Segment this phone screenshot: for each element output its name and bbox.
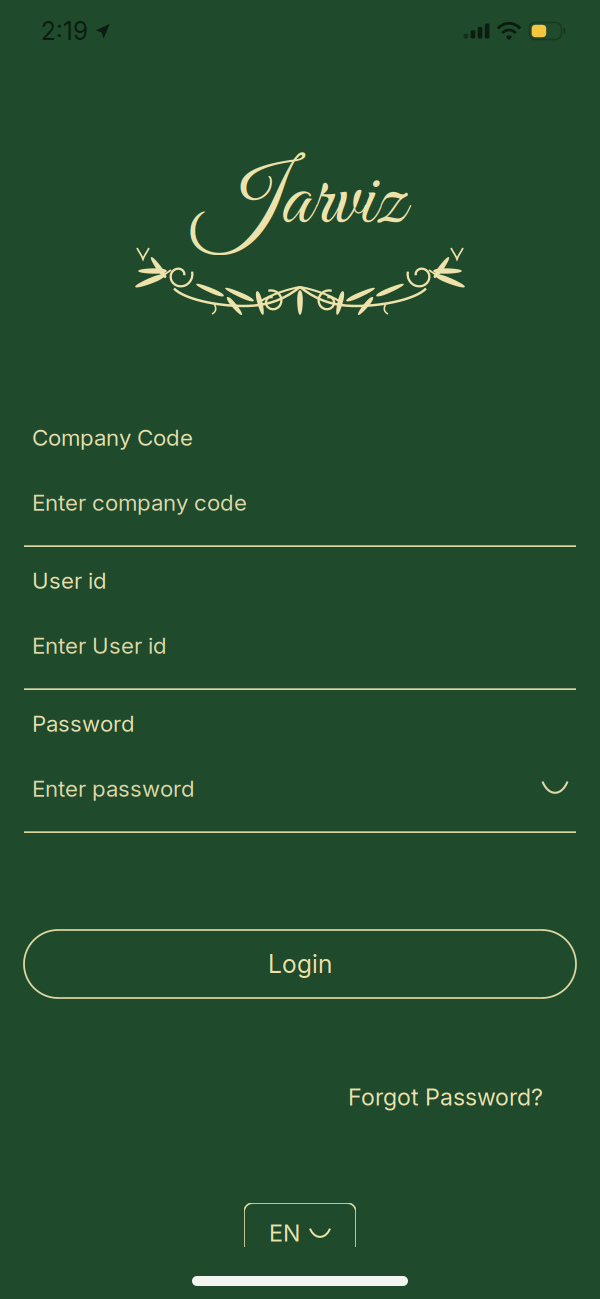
button[interactable]: EN	[244, 1203, 356, 1247]
staticText: Forgot Password?	[348, 1083, 543, 1111]
staticText: Company Code	[32, 424, 193, 451]
staticText: Password	[32, 710, 135, 737]
button[interactable]: Login	[24, 930, 576, 998]
button[interactable]: Forgot Password?	[348, 1077, 543, 1117]
staticText: 2:19	[41, 16, 88, 46]
staticText: Enter company code	[32, 489, 247, 516]
staticText: Enter password	[32, 775, 195, 802]
staticText: EN	[269, 1219, 300, 1247]
staticText: Login	[268, 949, 332, 979]
button[interactable]: Show password	[541, 779, 576, 799]
staticText: User id	[32, 567, 107, 594]
staticText: Enter User id	[32, 632, 167, 659]
staticText: Jarviz	[195, 149, 404, 257]
